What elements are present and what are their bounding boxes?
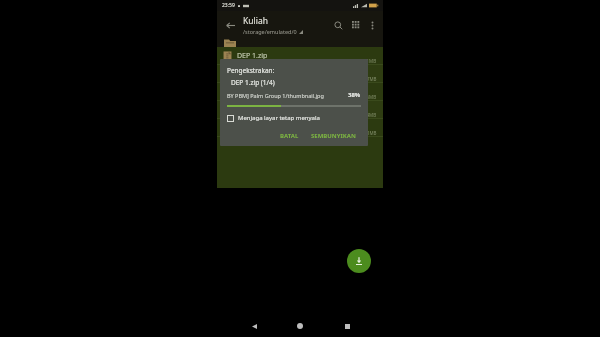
staticText: DEP 1.zip (1/4)	[231, 78, 275, 87]
button[interactable]	[217, 38, 383, 47]
button[interactable]: RUTE AREA LEBAK JERO.zip	[217, 101, 383, 119]
button[interactable]: Menjaga layar tetap menyala	[227, 114, 361, 122]
staticText: 23:59	[222, 2, 235, 9]
staticText: DEP UTAMA.zip	[237, 87, 377, 97]
button[interactable]: DEP 1.zip	[217, 47, 383, 65]
button[interactable]: Back	[221, 16, 239, 34]
staticText: BY PBM] Palm Group 1/thumbnail.jpg	[227, 92, 345, 99]
staticText: Pengekstrakan:	[227, 66, 275, 75]
staticText: 38%	[348, 91, 361, 99]
staticText: RUTE AREA LEBAK JERO.zip	[237, 105, 377, 115]
staticText: /storage/emulated/0	[243, 28, 297, 35]
staticText: 81.77MB	[358, 76, 377, 82]
staticText: DEP 1.zip	[237, 51, 377, 61]
button[interactable]: More options	[365, 18, 379, 32]
staticText: 141.54MB	[355, 112, 377, 118]
staticText: SURVEY.zip	[237, 123, 377, 133]
staticText: Kuliah	[243, 15, 268, 27]
staticText: DEP 2.zip	[237, 69, 377, 79]
button[interactable]: DEP UTAMA.zip	[217, 83, 383, 101]
button[interactable]: DEP 2.zip	[217, 65, 383, 83]
button[interactable]: SURVEY.zip	[217, 119, 383, 137]
button[interactable]: Download	[347, 249, 371, 273]
staticText: Menjaga layar tetap menyala	[238, 114, 320, 122]
button[interactable]: Home	[290, 316, 310, 336]
button[interactable]: Recent apps	[337, 316, 357, 336]
button[interactable]: Search	[329, 16, 347, 34]
button[interactable]: Change view	[347, 16, 365, 34]
staticText: 60.11MB	[358, 130, 377, 136]
button[interactable]: Back	[244, 316, 264, 336]
staticText: BATAL	[280, 132, 299, 140]
staticText: 194.61MB	[355, 58, 377, 64]
button[interactable]: BATAL	[275, 129, 304, 143]
staticText: SEMBUNYIKAN	[311, 132, 356, 140]
staticText: 336.36MB	[355, 94, 377, 100]
button[interactable]: SEMBUNYIKAN	[306, 129, 361, 143]
